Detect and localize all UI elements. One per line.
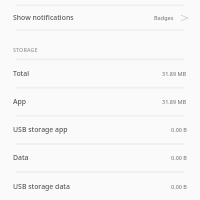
button[interactable]: Show notifications (0, 5, 200, 30)
button[interactable]: USB storage app (0, 115, 200, 143)
staticText: STORAGE (13, 46, 38, 53)
staticText: USB storage data (13, 182, 70, 191)
staticText: 0.00 B (171, 183, 187, 190)
staticText: Badges (154, 14, 174, 21)
staticText: 0.00 B (171, 154, 187, 161)
staticText: Data (13, 153, 29, 162)
staticText: Total (13, 69, 30, 78)
button[interactable]: Data (0, 143, 200, 171)
staticText: App (13, 97, 27, 106)
staticText: Show notifications (13, 13, 74, 22)
staticText: 31.89 MB (162, 70, 187, 77)
button[interactable]: App (0, 87, 200, 115)
staticText: 31.89 MB (162, 98, 187, 105)
other: Open notification badge settings (181, 14, 188, 22)
staticText: 0.00 B (171, 126, 187, 133)
button[interactable]: USB storage data (0, 172, 200, 200)
button[interactable]: Total (0, 59, 200, 87)
staticText: USB storage app (13, 125, 68, 134)
